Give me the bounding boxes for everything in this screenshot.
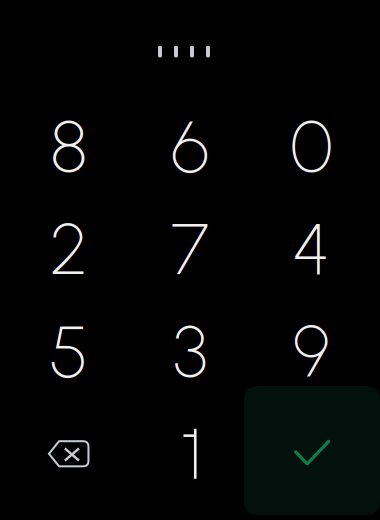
staticText: 4	[292, 205, 330, 292]
staticText: 8	[50, 103, 87, 189]
staticText: 6	[171, 103, 209, 189]
button[interactable]: 1	[129, 402, 251, 505]
staticText: 3	[173, 308, 207, 394]
button[interactable]: 2	[8, 197, 129, 300]
staticText: 7	[171, 205, 209, 292]
button[interactable]: 6	[129, 95, 251, 197]
staticText: 2	[50, 205, 88, 292]
staticText: 9	[293, 308, 330, 394]
button[interactable]: Delete	[8, 402, 129, 505]
button[interactable]: 7	[129, 197, 251, 300]
button[interactable]: 5	[8, 300, 129, 402]
button[interactable]: 4	[251, 197, 372, 300]
button[interactable]: 8	[8, 95, 129, 197]
button[interactable]: 0	[251, 95, 372, 197]
staticText: 5	[49, 308, 88, 394]
button[interactable]: Confirm	[244, 386, 380, 515]
button[interactable]: 9	[251, 300, 372, 402]
staticText: 0	[290, 103, 332, 189]
button[interactable]: 3	[129, 300, 251, 402]
